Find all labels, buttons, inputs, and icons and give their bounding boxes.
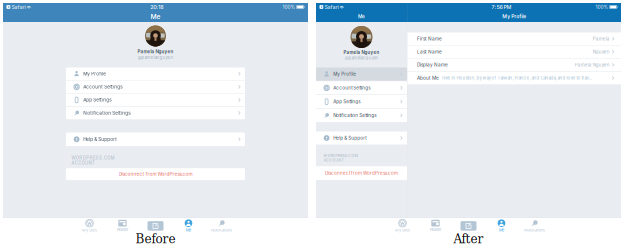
button[interactable]: Account Settings <box>316 81 407 94</box>
staticText: Before <box>135 232 175 246</box>
button[interactable]: New Post <box>139 220 172 231</box>
staticText: @pamelanguyen <box>137 55 173 60</box>
staticText: Help & Support <box>83 136 117 142</box>
staticText: Display Name <box>417 62 448 68</box>
button[interactable]: Reader <box>419 220 452 232</box>
staticText: @pamelanguyen <box>344 55 378 60</box>
staticText: Pamela Nguyen <box>137 49 173 54</box>
staticText: Pamela <box>593 36 610 42</box>
button[interactable]: Notifications <box>518 219 551 232</box>
staticText: About Me <box>417 75 439 81</box>
button[interactable]: New Post <box>452 220 485 231</box>
staticText: Pamela Nguyen <box>575 62 610 68</box>
button[interactable]: Account Settings <box>66 81 245 93</box>
staticText: Me <box>499 228 504 232</box>
staticText: WORDPRESS.COM ACCOUNT <box>71 156 115 166</box>
button[interactable]: Notifications <box>205 219 238 232</box>
staticText: First Name <box>417 36 442 42</box>
staticText: 100% <box>595 4 608 10</box>
staticText: Me <box>186 228 191 232</box>
button[interactable]: My Sites <box>386 219 419 232</box>
button[interactable]: Me <box>485 219 518 232</box>
button[interactable]: Notification Settings <box>316 109 407 122</box>
button[interactable]: Me <box>172 219 205 232</box>
button[interactable]: My Profile <box>316 67 407 81</box>
staticText: Notification Settings <box>83 110 130 116</box>
staticText: Me <box>150 12 160 21</box>
staticText: Reader <box>430 227 441 232</box>
staticText: My Profile <box>83 71 106 77</box>
staticText: Pamela Nguyen <box>343 50 379 55</box>
button[interactable]: Reader <box>106 220 139 232</box>
button[interactable]: About Me <box>407 72 621 84</box>
staticText: WORDPRESS.COM ACCOUNT <box>323 153 357 162</box>
button[interactable]: Disconnect from WordPress.com <box>66 168 245 180</box>
staticText: 100% <box>282 4 295 10</box>
staticText: Me <box>358 14 365 19</box>
staticText: Notifications <box>211 228 232 232</box>
staticText: Nguyen <box>593 49 610 55</box>
staticText: Help & Support <box>333 135 366 141</box>
button[interactable]: Disconnect from WordPress.com <box>316 166 407 180</box>
button[interactable]: App Settings <box>66 94 245 106</box>
staticText: I live in Houston, by way of Taiwan, Fra… <box>442 75 593 81</box>
staticText: App Settings <box>83 97 111 103</box>
staticText: Reader <box>117 227 128 232</box>
button[interactable]: Display Name <box>407 59 621 71</box>
staticText: My Sites <box>395 228 410 232</box>
staticText: Last Name <box>417 49 442 55</box>
staticText: My Profile <box>333 71 356 77</box>
button[interactable]: Help & Support <box>66 132 245 146</box>
button[interactable]: Notification Settings <box>66 107 245 119</box>
staticText: Safari <box>11 4 25 10</box>
staticText: My Profile <box>502 13 526 19</box>
staticText: After <box>453 232 483 246</box>
button[interactable]: First Name <box>407 32 621 45</box>
staticText: Account Settings <box>333 85 370 91</box>
staticText: 7:56 PM <box>491 4 511 10</box>
staticText: 20:18 <box>150 4 163 10</box>
staticText: Account Settings <box>83 84 122 90</box>
staticText: Disconnect from WordPress.com <box>118 171 192 177</box>
staticText: Disconnect from WordPress.com <box>325 170 398 176</box>
staticText: Notifications <box>524 228 545 232</box>
staticText: My Sites <box>82 228 97 232</box>
staticText: Notification Settings <box>333 113 376 118</box>
button[interactable]: Last Name <box>407 45 621 58</box>
staticText: App Settings <box>333 99 360 104</box>
button[interactable]: Help & Support <box>316 131 407 144</box>
button[interactable]: My Profile <box>66 67 245 80</box>
button[interactable]: App Settings <box>316 95 407 108</box>
staticText: Safari <box>324 4 338 10</box>
button[interactable]: My Sites <box>73 219 106 232</box>
